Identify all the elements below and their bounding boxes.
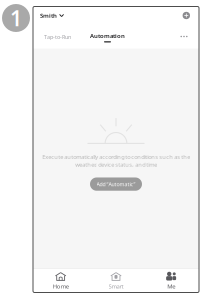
staticText: 1 xyxy=(10,3,22,33)
button[interactable]: Add device xyxy=(181,10,192,21)
staticText: Execute automatically according to condi… xyxy=(42,153,190,168)
staticText: Me xyxy=(167,282,175,290)
button[interactable]: Me xyxy=(144,268,199,293)
staticText: Automation xyxy=(90,32,125,40)
button[interactable]: Home xyxy=(33,268,88,293)
button[interactable]: Tap-to-Run xyxy=(41,32,74,41)
button[interactable]: Automation xyxy=(87,31,128,42)
staticText: Smith xyxy=(40,11,57,20)
button[interactable]: Smith xyxy=(40,9,64,22)
staticText: Add “Automatic” xyxy=(96,181,135,188)
staticText: Home xyxy=(53,282,69,290)
staticText: Smart xyxy=(108,282,123,290)
button[interactable]: Smart xyxy=(88,268,144,293)
button[interactable]: Add “Automatic” xyxy=(90,177,142,191)
button[interactable]: More options xyxy=(177,29,191,43)
staticText: Tap-to-Run xyxy=(44,33,71,41)
